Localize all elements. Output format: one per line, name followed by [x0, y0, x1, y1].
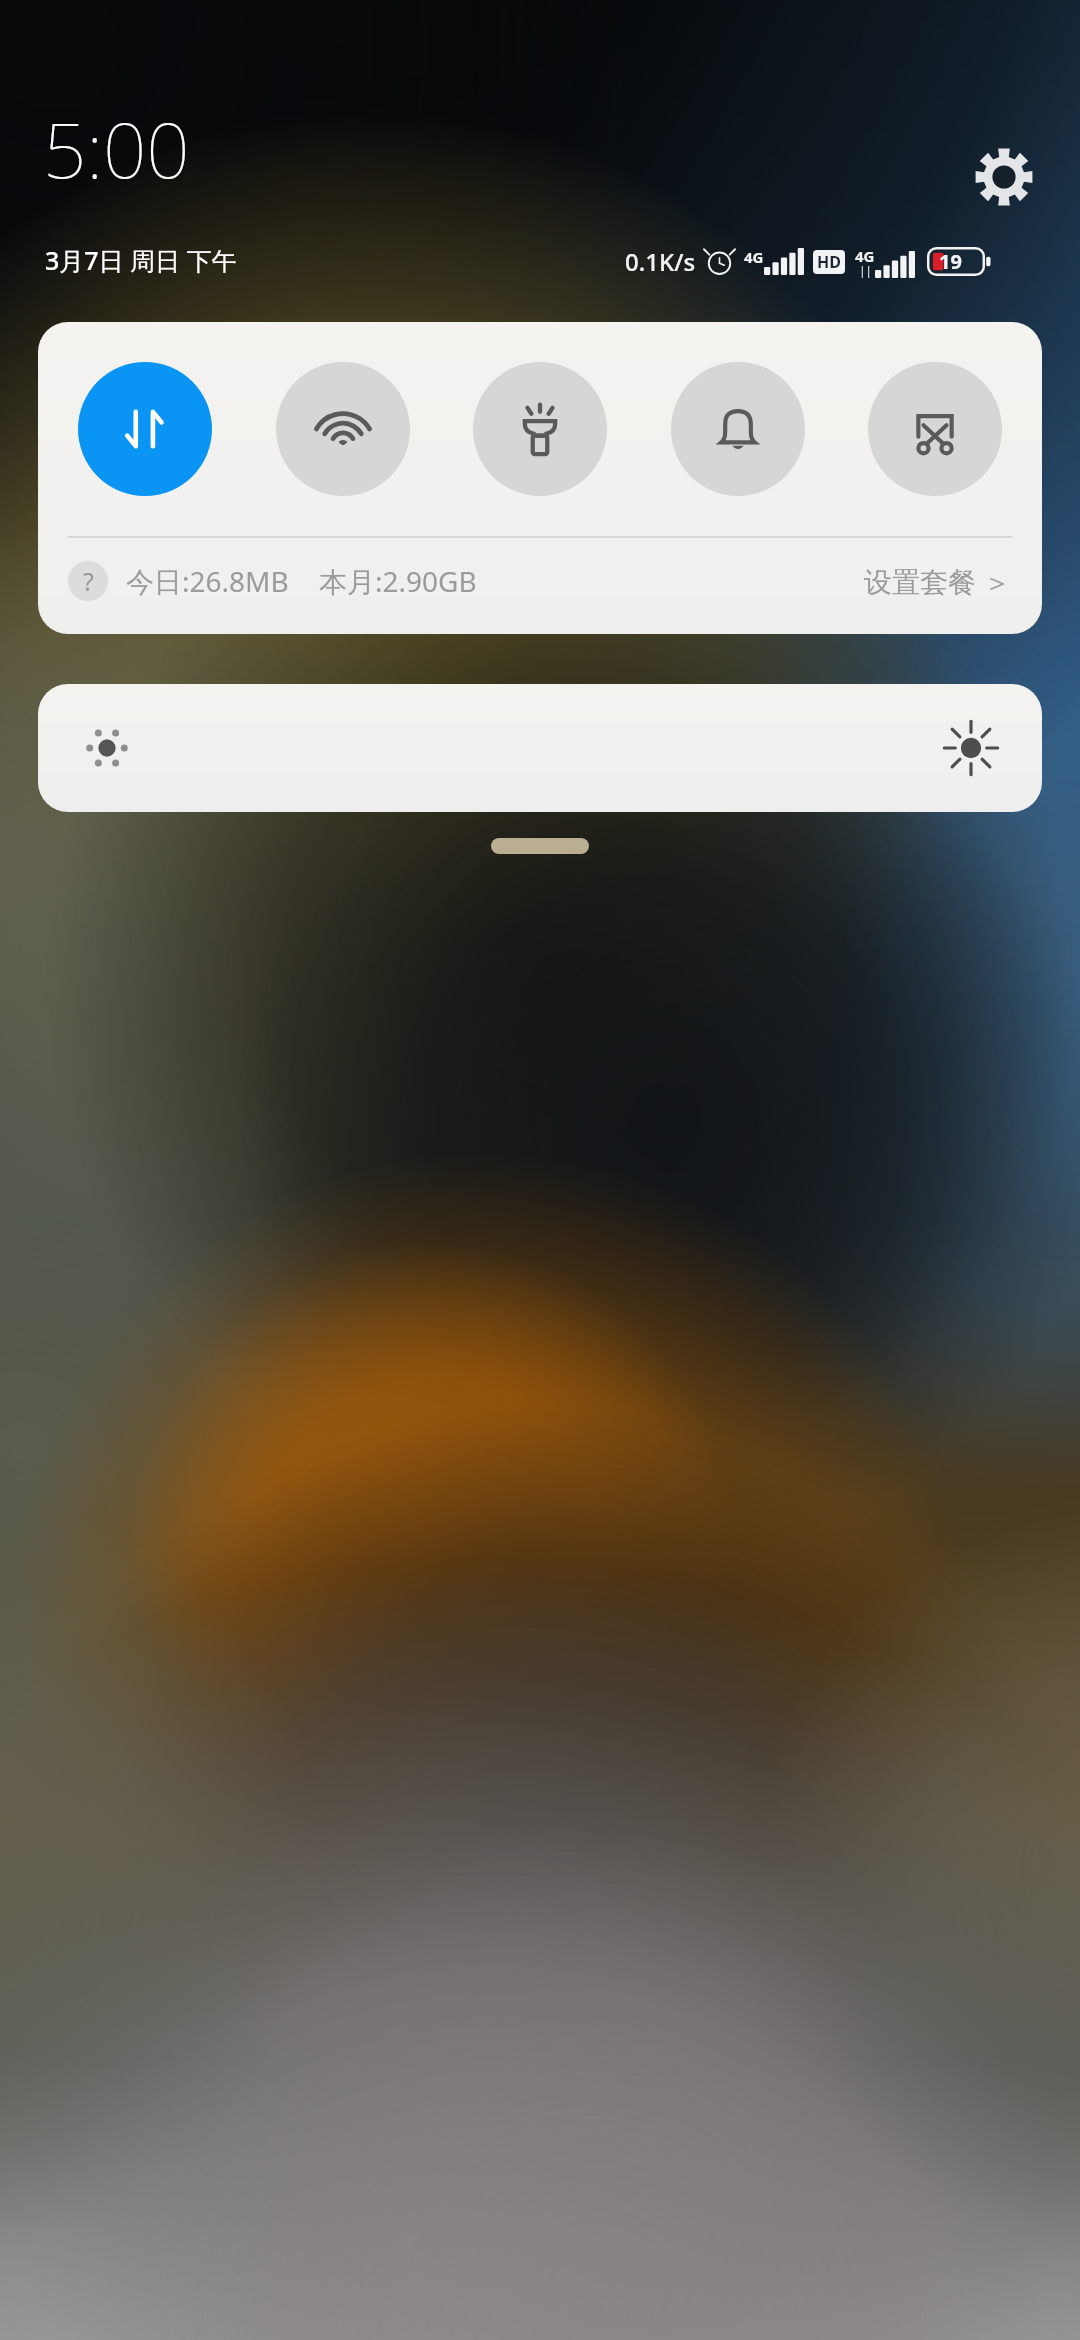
staticText: 19: [939, 248, 962, 275]
button[interactable]: Brightness: [38, 684, 1042, 812]
staticText: 今日:26.8MB: [126, 562, 289, 600]
button[interactable]: ?: [38, 538, 1042, 624]
button[interactable]: Settings: [962, 135, 1046, 219]
staticText: 5:00: [43, 97, 190, 201]
button[interactable]: Wi-Fi: [276, 362, 410, 496]
button[interactable]: Mobile data: [78, 362, 212, 496]
button[interactable]: Screenshot: [868, 362, 1002, 496]
staticText: 4G: [855, 246, 875, 266]
staticText: 设置套餐 ＞: [864, 562, 1012, 600]
button[interactable]: Expand: [491, 838, 589, 854]
button[interactable]: Flashlight: [473, 362, 607, 496]
staticText: 本月:2.90GB: [319, 562, 477, 600]
staticText: ?: [83, 564, 94, 598]
staticText: 0.1K/s: [625, 245, 696, 278]
staticText: HD: [817, 251, 841, 273]
staticText: 4G: [744, 247, 764, 267]
button[interactable]: Ringer: [671, 362, 805, 496]
staticText: 3月7日 周日 下午: [45, 243, 237, 277]
